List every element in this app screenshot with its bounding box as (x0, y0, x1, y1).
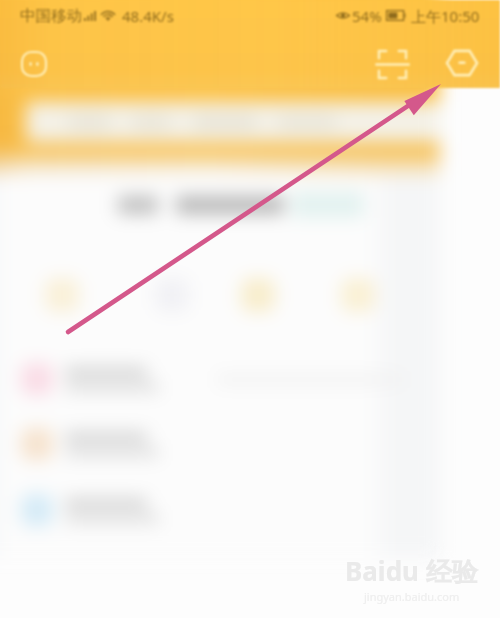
button[interactable]: Shortcut (45, 278, 79, 312)
staticText: jingyan.baidu.com (364, 589, 460, 604)
staticText: 48.4K/s (122, 6, 174, 26)
staticText: Baidu 经验 (345, 553, 478, 589)
button[interactable] (0, 419, 500, 469)
button[interactable] (0, 551, 500, 601)
button[interactable] (0, 354, 500, 404)
button[interactable]: Messages (12, 42, 56, 86)
staticText: 54% (352, 6, 382, 26)
button[interactable]: Scan QR code (370, 42, 414, 86)
button[interactable]: More options (440, 41, 484, 85)
staticText: 中国移动 (20, 6, 82, 26)
button[interactable] (26, 102, 462, 142)
button[interactable] (0, 485, 500, 535)
button[interactable]: Shortcut (241, 278, 275, 312)
staticText: 上午10:50 (411, 6, 480, 26)
button[interactable]: Shortcut (341, 278, 375, 312)
